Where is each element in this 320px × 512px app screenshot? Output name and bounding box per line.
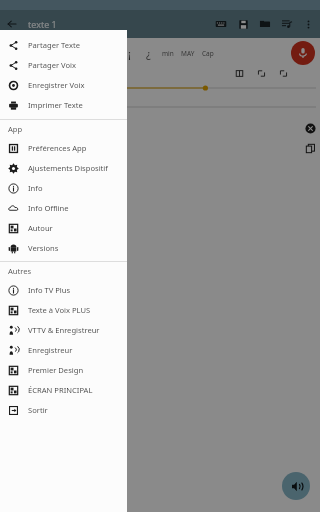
button[interactable]: Partager Texte: [0, 35, 127, 55]
staticText: texte 1: [28, 18, 57, 30]
button[interactable]: More options: [298, 14, 318, 34]
button[interactable]: %: [63, 45, 82, 61]
button[interactable]: Info TV Plus: [0, 280, 127, 300]
button[interactable]: Open folder: [254, 13, 276, 35]
staticText: Sortir: [28, 405, 48, 415]
button[interactable]: Info Offline: [0, 198, 127, 218]
button[interactable]: Back: [0, 12, 24, 36]
staticText: Ajustements Dispositif: [28, 163, 108, 173]
button[interactable]: Speak: [282, 472, 310, 500]
staticText: VTTV & Enregistreur: [28, 325, 100, 335]
button[interactable]: Enregistrer Voix: [0, 75, 127, 95]
staticText: ¿: [146, 46, 151, 61]
button[interactable]: Save: [232, 13, 254, 35]
button[interactable]: Columns: [235, 69, 244, 78]
staticText: Texte à Voix PLUS: [28, 305, 91, 315]
staticText: Premier Design: [28, 365, 84, 375]
staticText: min: [162, 49, 174, 58]
button[interactable]: Autour: [0, 218, 127, 238]
staticText: Autour: [28, 223, 53, 233]
staticText: Autres: [8, 266, 32, 276]
button[interactable]: min: [158, 45, 178, 61]
button[interactable]: Record voice: [291, 41, 315, 65]
staticText: @: [11, 46, 21, 61]
button[interactable]: Info: [0, 178, 127, 198]
button[interactable]: Copy: [305, 143, 316, 154]
button[interactable]: Préférences App: [0, 138, 127, 158]
button[interactable]: Select: [257, 69, 266, 78]
staticText: Versions: [28, 243, 59, 253]
button[interactable]: Crop: [279, 69, 288, 78]
button[interactable]: -: [25, 45, 44, 61]
button[interactable]: Playlist: [276, 13, 298, 35]
staticText: Info: [28, 183, 43, 193]
staticText: -: [33, 46, 37, 61]
button[interactable]: Sortir: [0, 400, 127, 420]
button[interactable]: Keyboard: [210, 13, 232, 35]
staticText: App: [8, 124, 23, 134]
button[interactable]: Cap: [198, 45, 218, 61]
staticText: Partager Voix: [28, 60, 77, 70]
staticText: ¡: [128, 46, 131, 61]
button[interactable]: ¿: [139, 45, 158, 61]
button[interactable]: ¡: [120, 45, 139, 61]
staticText: Info TV Plus: [28, 285, 71, 295]
button[interactable]: Slider: [0, 82, 320, 94]
staticText: Préférences App: [28, 143, 87, 153]
button[interactable]: $: [44, 45, 63, 61]
staticText: ÉCRAN PRINCIPAL: [28, 385, 93, 395]
button[interactable]: Premier Design: [0, 360, 127, 380]
staticText: Cap: [202, 49, 214, 58]
staticText: Partager Texte: [28, 40, 80, 50]
staticText: Info Offline: [28, 203, 69, 213]
button[interactable]: @: [6, 45, 25, 61]
button[interactable]: Enregistreur: [0, 340, 127, 360]
staticText: Imprimer Texte: [28, 100, 83, 110]
staticText: MAY: [181, 49, 195, 58]
button[interactable]: Slider: [0, 101, 320, 113]
button[interactable]: Texte à Voix PLUS: [0, 300, 127, 320]
staticText: $: [50, 46, 57, 61]
button[interactable]: MAY: [178, 45, 198, 61]
button[interactable]: ÉCRAN PRINCIPAL: [0, 380, 127, 400]
button[interactable]: Partager Voix: [0, 55, 127, 75]
button[interactable]: Clear: [305, 123, 316, 134]
button[interactable]: VTTV & Enregistreur: [0, 320, 127, 340]
button[interactable]: Ajustements Dispositif: [0, 158, 127, 178]
staticText: Enregistreur: [28, 345, 73, 355]
staticText: Enregistrer Voix: [28, 80, 85, 90]
staticText: %: [68, 46, 78, 61]
button[interactable]: Versions: [0, 238, 127, 258]
button[interactable]: Imprimer Texte: [0, 95, 127, 115]
